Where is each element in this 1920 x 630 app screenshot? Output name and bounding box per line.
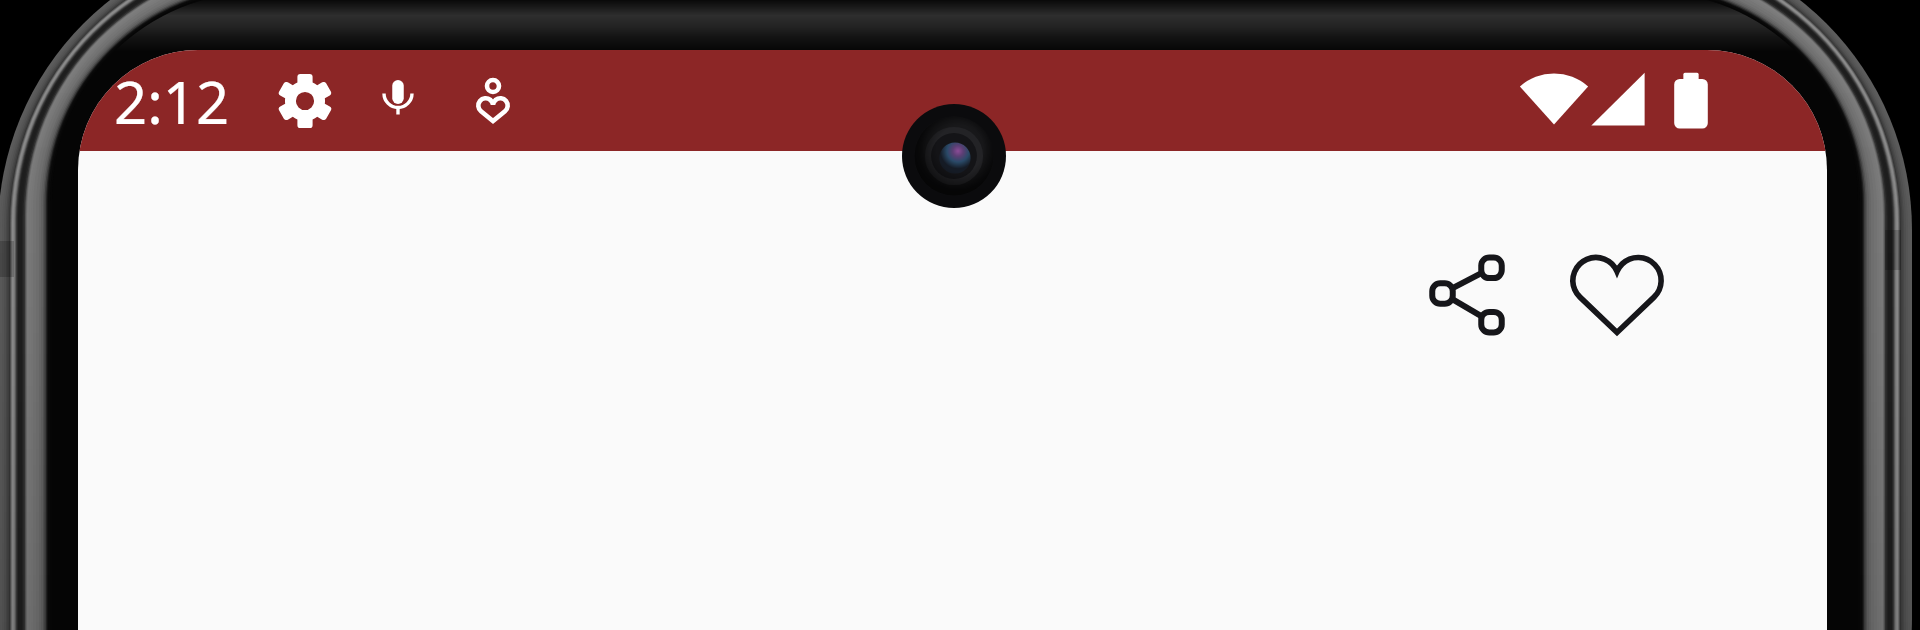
button[interactable]: Share — [1419, 247, 1515, 343]
button[interactable]: Add to favourites — [1563, 241, 1671, 349]
button[interactable]: Settings — [276, 72, 334, 130]
button[interactable]: Health notification — [464, 73, 522, 131]
button[interactable]: Mobile signal — [1583, 65, 1653, 135]
button[interactable]: Wi-Fi — [1519, 64, 1589, 134]
button[interactable]: Battery — [1656, 66, 1726, 136]
staticText: 2:12 — [114, 62, 230, 141]
button[interactable]: Microphone in use — [369, 72, 427, 130]
